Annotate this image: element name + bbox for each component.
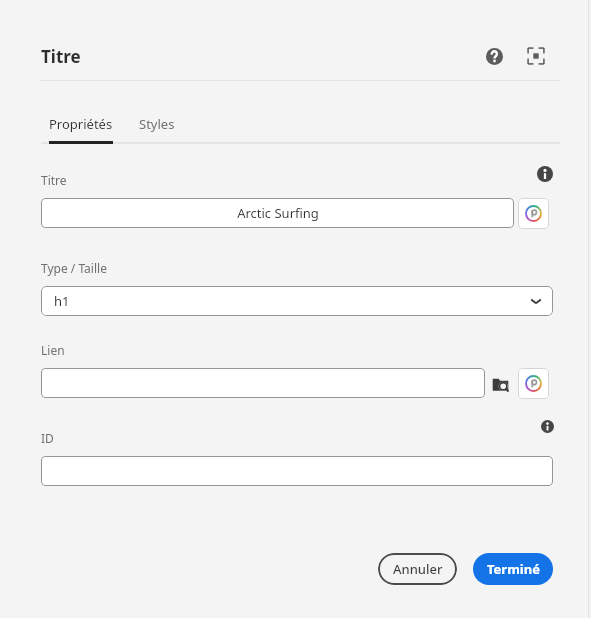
staticText: h1 — [54, 292, 70, 310]
button[interactable]: Styles — [131, 105, 183, 143]
button[interactable]: Annuler — [378, 553, 457, 585]
staticText: Arctic Surfing — [237, 204, 319, 222]
button[interactable] — [41, 368, 485, 398]
button[interactable]: Plein écran — [524, 44, 548, 68]
button[interactable]: Propriétés — [41, 105, 121, 143]
staticText: Lien — [41, 342, 65, 358]
staticText: Type / Taille — [41, 260, 107, 276]
staticText: Titre — [41, 172, 67, 188]
button[interactable]: Informations ID — [538, 417, 556, 435]
staticText: Styles — [139, 115, 175, 133]
button[interactable] — [41, 456, 553, 486]
button[interactable]: Terminé — [473, 553, 553, 585]
staticText: Propriétés — [49, 115, 113, 133]
staticText: Terminé — [487, 560, 540, 578]
button[interactable]: Générer le titre — [518, 198, 549, 229]
staticText: Annuler — [393, 560, 443, 578]
staticText: Titre — [41, 45, 81, 68]
staticText: ID — [41, 430, 54, 446]
button[interactable]: Aide — [482, 44, 506, 68]
button[interactable]: Arctic Surfing — [41, 198, 514, 228]
button[interactable]: h1 — [41, 286, 553, 316]
button[interactable]: Générer le lien — [518, 368, 549, 399]
button[interactable]: Parcourir — [485, 368, 515, 398]
button[interactable]: Informations titre — [535, 164, 555, 184]
